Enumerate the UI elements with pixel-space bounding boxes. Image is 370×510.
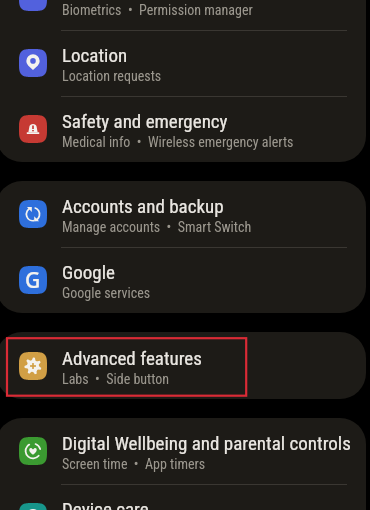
other: Google	[19, 266, 47, 294]
button[interactable]: Google	[0, 247, 366, 313]
staticText: Google services	[62, 285, 151, 301]
other: Location	[19, 49, 47, 77]
button[interactable]: Location	[0, 30, 366, 96]
staticText: Location	[62, 44, 128, 66]
other: Device care	[19, 503, 47, 510]
other: Accounts and backup	[19, 200, 47, 228]
staticText: Location requests	[62, 68, 162, 84]
staticText: Device care	[62, 498, 149, 510]
other: Safety and emergency	[19, 115, 47, 143]
staticText: Manage accounts • Smart Switch	[62, 219, 252, 235]
button[interactable]: Digital Wellbeing	[0, 418, 366, 484]
staticText: Accounts and backup	[62, 195, 224, 217]
staticText: G	[25, 266, 41, 294]
button[interactable]: Safety and emergency	[0, 96, 366, 162]
staticText: Safety and emergency	[62, 110, 228, 132]
staticText: Screen time • App timers	[62, 456, 206, 472]
staticText: Advanced features	[62, 347, 202, 369]
other: Digital Wellbeing	[19, 437, 47, 465]
staticText: Google	[62, 261, 115, 283]
button[interactable]: Advanced features	[0, 332, 366, 399]
staticText: Digital Wellbeing and parental controls	[62, 432, 351, 454]
other: Biometrics and security	[19, 0, 47, 11]
button[interactable]: Biometrics and security	[0, 0, 366, 30]
staticText: Medical info • Wireless emergency alerts	[62, 134, 294, 150]
other: Advanced features	[19, 352, 47, 380]
button[interactable]: Accounts and backup	[0, 181, 366, 247]
staticText: Labs • Side button	[62, 371, 170, 387]
staticText: Biometrics • Permission manager	[62, 2, 253, 18]
button[interactable]: Device care	[0, 484, 366, 510]
